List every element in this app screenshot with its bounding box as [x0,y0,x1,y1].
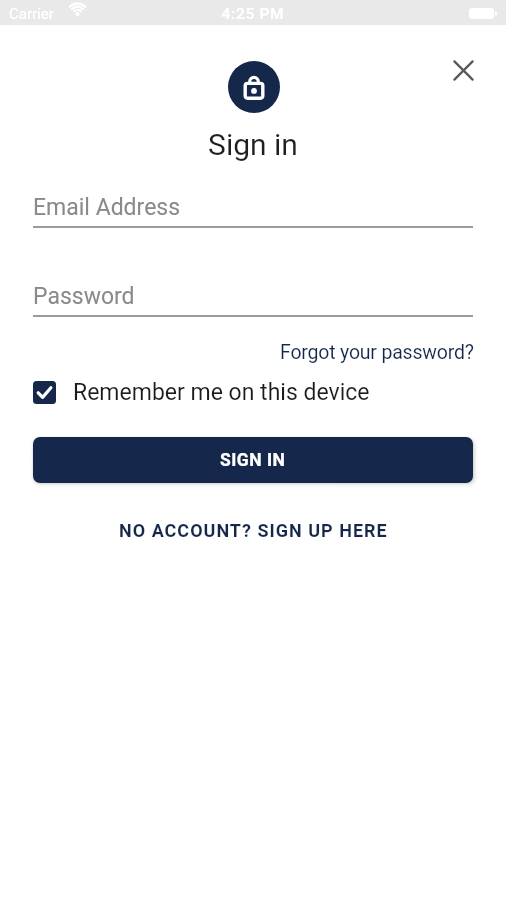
staticText: NO ACCOUNT? SIGN UP HERE [119,520,388,541]
staticText: Sign in [0,127,506,162]
staticText: Carrier [9,5,54,23]
staticText: Remember me on this device [73,379,370,406]
button[interactable] [447,54,480,87]
button[interactable]: SIGN IN [33,437,473,483]
button[interactable]: Forgot your password? [280,341,474,364]
staticText: 4:25 PM [0,5,506,23]
staticText: SIGN IN [220,450,286,471]
button[interactable]: Remember me on this device [33,379,370,406]
staticText: Forgot your password? [280,341,474,364]
staticText: Email Address [33,194,181,221]
staticText: Password [33,283,135,310]
button[interactable]: NO ACCOUNT? SIGN UP HERE [119,520,388,541]
